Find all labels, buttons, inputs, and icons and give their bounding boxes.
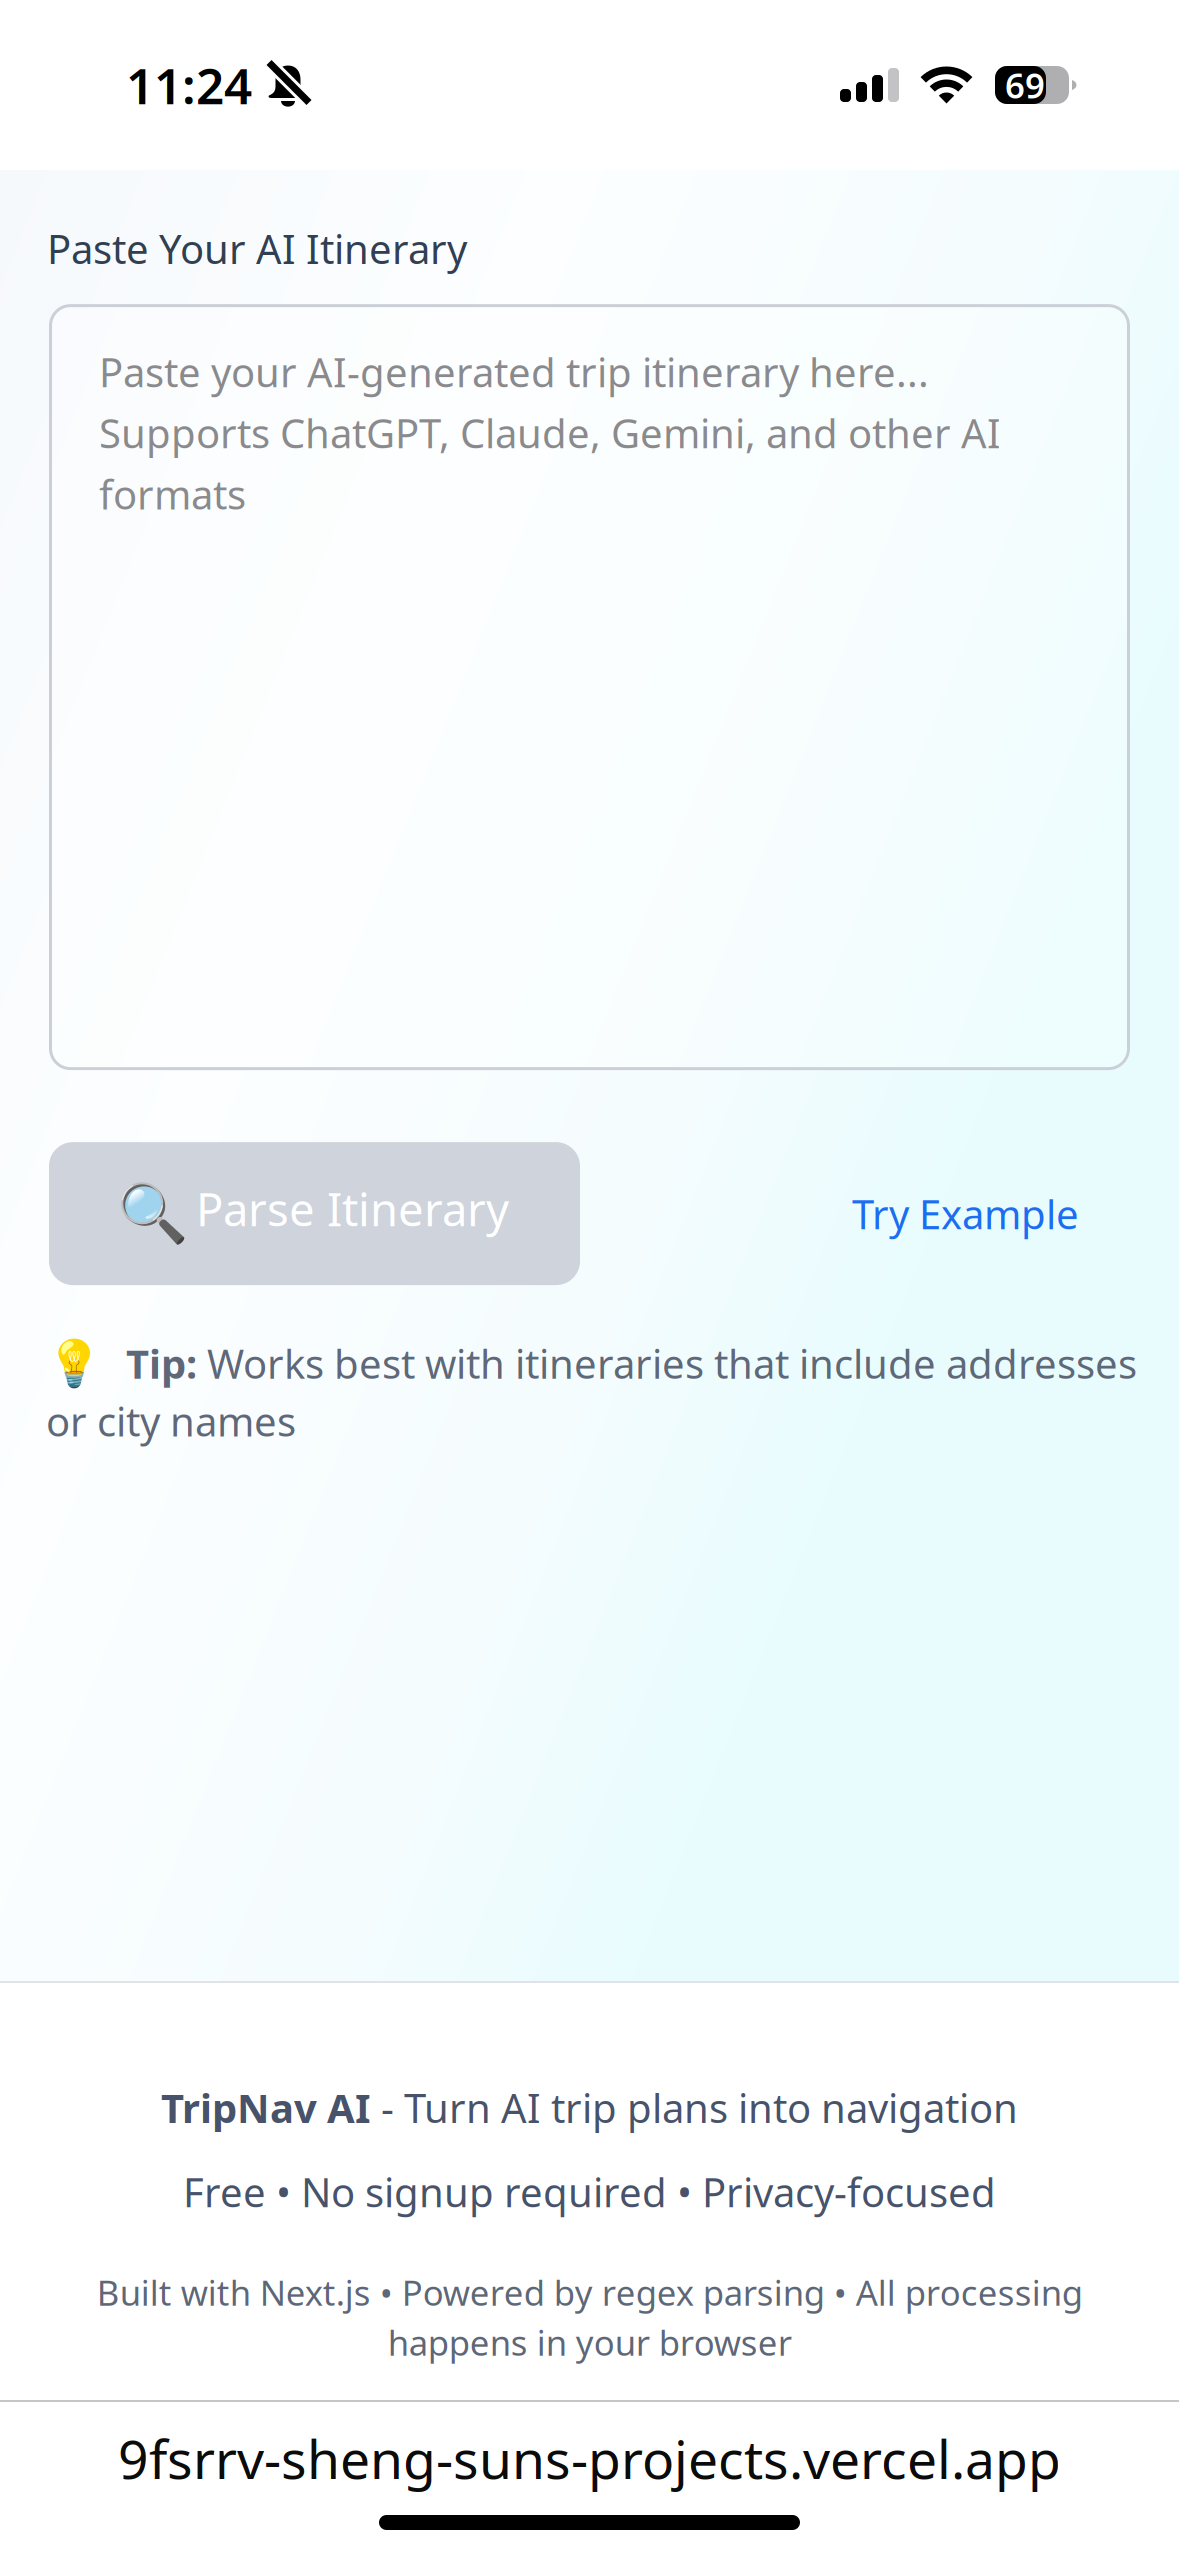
staticText: 11:24 <box>126 52 252 118</box>
button[interactable]: Try Example <box>852 1187 1079 1240</box>
staticText: 💡 Tip: Works best with itineraries that … <box>46 1331 1137 1391</box>
staticText: Free • No signup required • Privacy-focu… <box>183 2165 996 2218</box>
button[interactable]: 9fsrrv-sheng-suns-projects.vercel.app <box>118 2423 1061 2494</box>
staticText: Built with Next.js • Powered by regex pa… <box>96 2269 1082 2365</box>
staticText: 🔍 <box>117 1181 188 1246</box>
staticText: Parse Itinerary <box>196 1178 509 1239</box>
button[interactable]: 🔍 <box>49 1142 580 1285</box>
staticText: 9fsrrv-sheng-suns-projects.vercel.app <box>118 2423 1061 2494</box>
staticText: or city names <box>46 1394 296 1447</box>
staticText: TripNav AI - Turn AI trip plans into nav… <box>161 2081 1018 2134</box>
staticText: 69 <box>1005 62 1045 108</box>
staticText: Paste your AI-generated trip itinerary h… <box>99 345 1001 520</box>
staticText: Try Example <box>852 1187 1079 1240</box>
staticText: Paste Your AI Itinerary <box>47 222 467 275</box>
